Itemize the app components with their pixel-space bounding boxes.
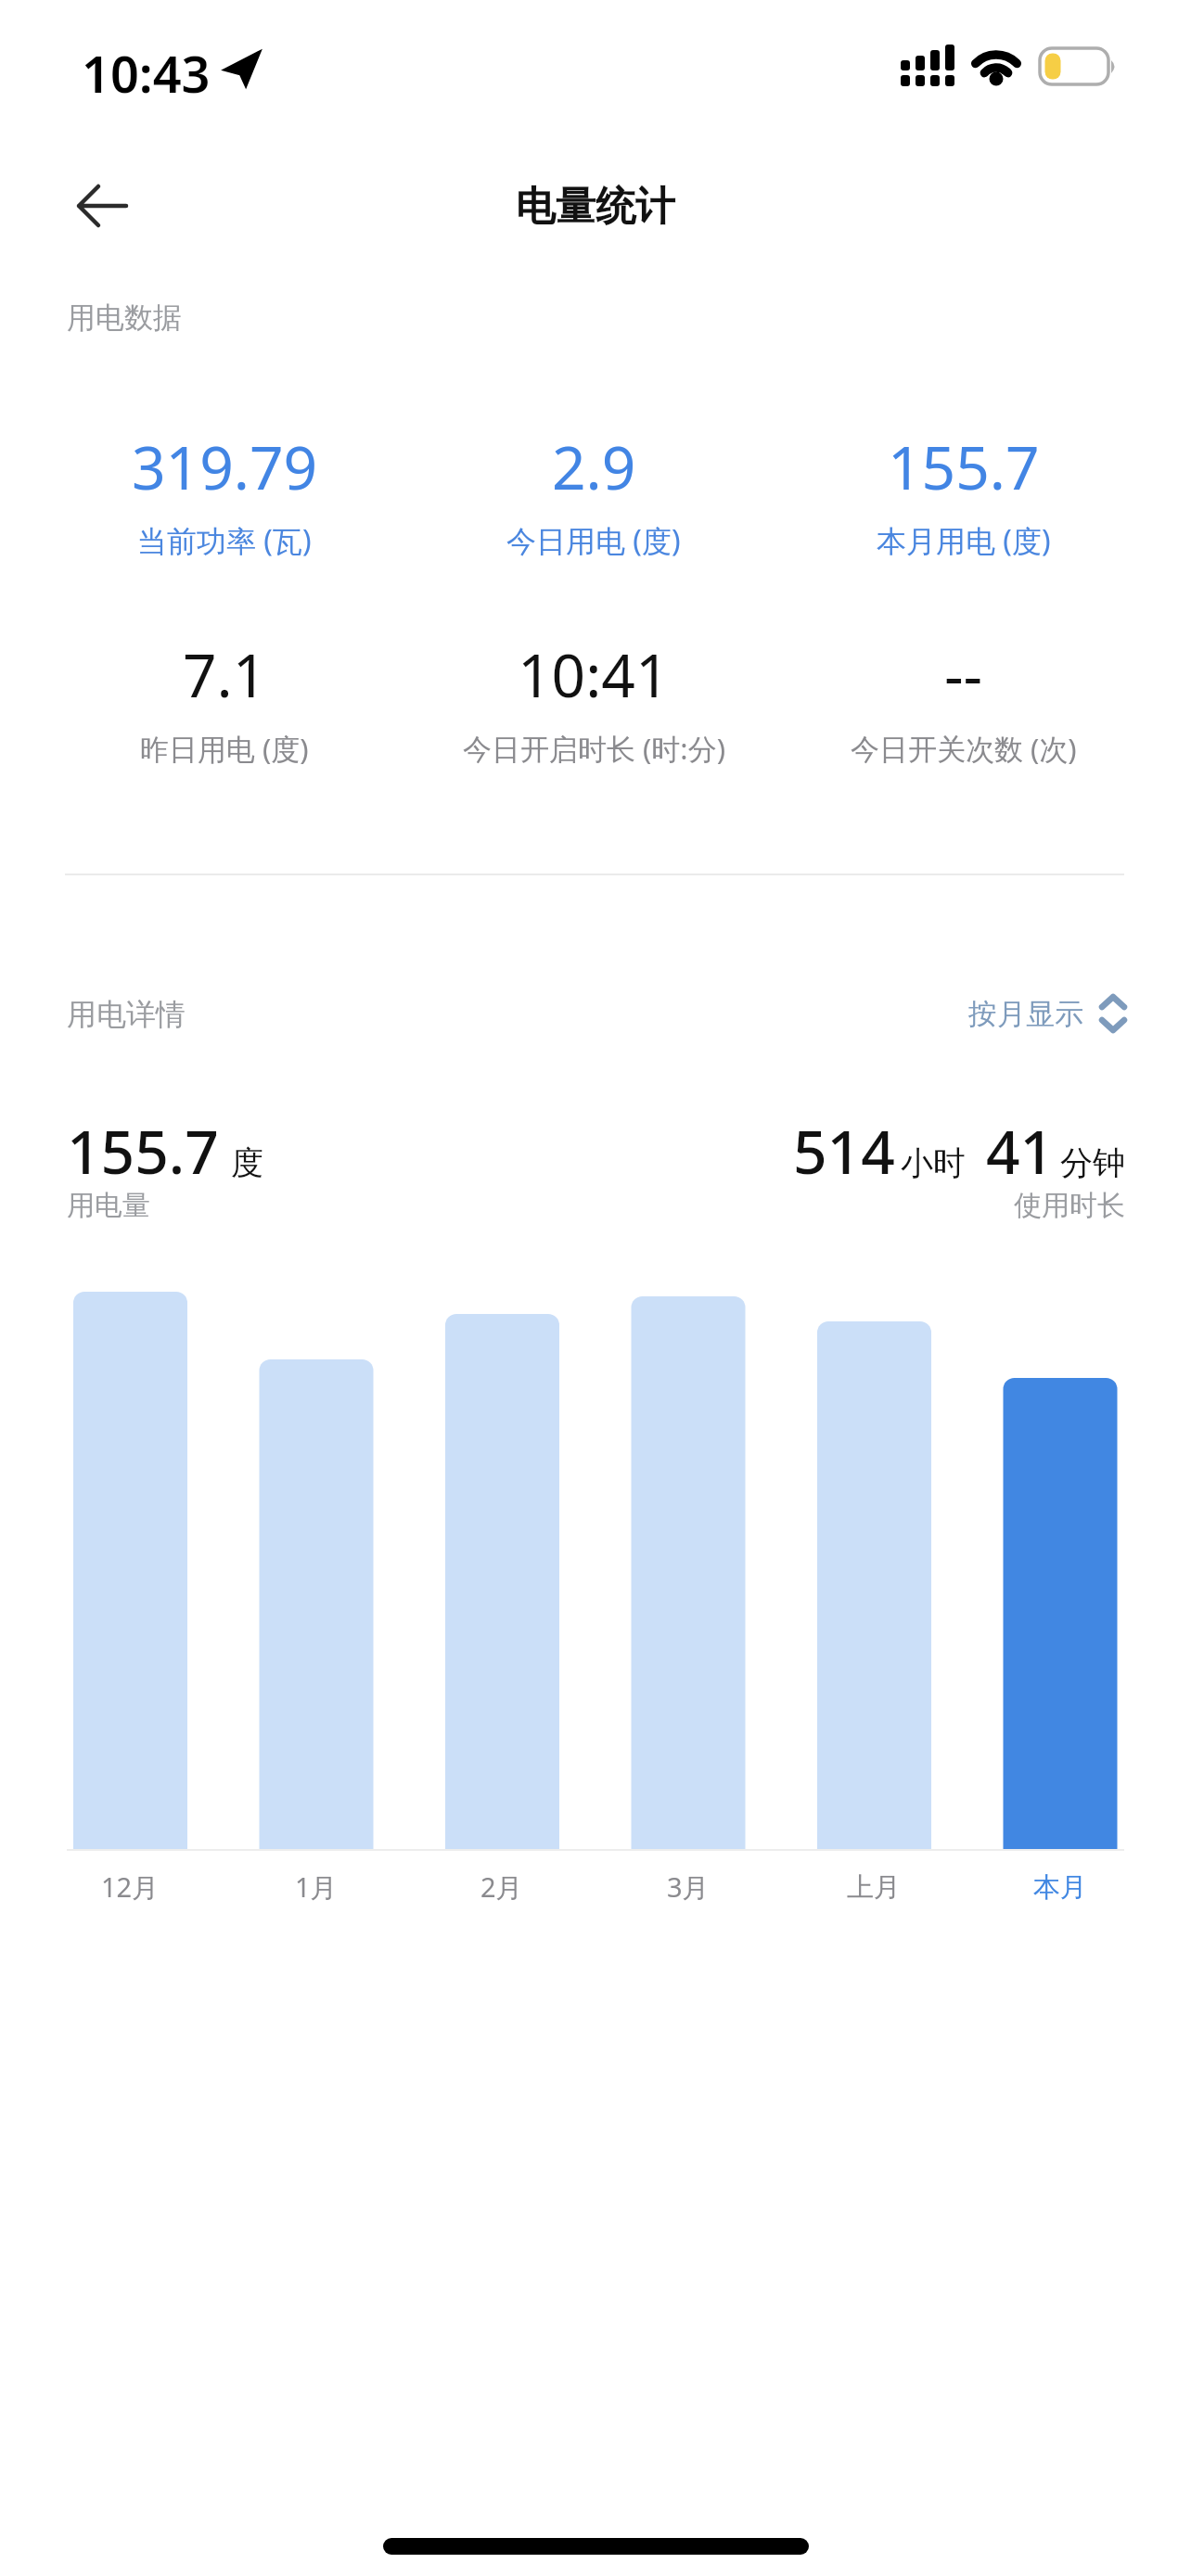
staticText: 昨日用电 (度) [140, 729, 309, 768]
staticText: 今日用电 (度) [506, 520, 681, 561]
staticText: 小时 [901, 1142, 966, 1183]
button[interactable] [56, 172, 148, 239]
staticText: 514 [793, 1111, 895, 1192]
button[interactable]: 按月显示 [942, 985, 1124, 1042]
staticText: 当前功率 (瓦) [137, 520, 312, 561]
staticText: 1月 [295, 1868, 338, 1906]
staticText: 用电量 [67, 1188, 150, 1223]
staticText: 本月 [1033, 1870, 1087, 1905]
staticText: 41 [986, 1111, 1055, 1192]
staticText: 使用时长 [1014, 1188, 1125, 1223]
staticText: 分钟 [1060, 1142, 1125, 1183]
staticText: 155.7 [67, 1111, 219, 1192]
staticText: 7.1 [183, 634, 267, 712]
staticText: 度 [231, 1142, 263, 1183]
staticText: 今日开启时长 (时:分) [463, 729, 725, 768]
staticText: 用电数据 [67, 300, 182, 336]
staticText: 10:43 [82, 39, 211, 95]
staticText: 电量统计 [516, 182, 675, 232]
staticText: 本月用电 (度) [877, 520, 1051, 561]
staticText: -- [944, 634, 983, 712]
staticText: 12月 [101, 1868, 160, 1906]
staticText: 3月 [667, 1868, 710, 1906]
staticText: 155.7 [888, 427, 1040, 504]
staticText: 按月显示 [968, 996, 1083, 1032]
staticText: 2月 [480, 1868, 523, 1906]
staticText: 10:41 [518, 634, 670, 712]
staticText: 319.79 [132, 427, 318, 504]
staticText: 2.9 [552, 427, 636, 504]
staticText: 今日开关次数 (次) [851, 729, 1077, 768]
staticText: 上月 [847, 1870, 901, 1905]
staticText: 用电详情 [67, 996, 186, 1033]
